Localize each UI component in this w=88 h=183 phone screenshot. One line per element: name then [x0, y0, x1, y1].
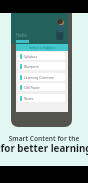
- button[interactable]: Notes: [18, 94, 65, 102]
- staticText: Old Paper: [24, 85, 40, 90]
- staticText: Syllabus: [24, 54, 38, 59]
- staticText: Select a Subject: [29, 45, 56, 50]
- button[interactable]: Syllabus: [18, 52, 65, 60]
- staticText: for better learning: [0, 142, 88, 155]
- button[interactable]: Select a Subject: [16, 44, 68, 51]
- staticText: Learning Outcome: [24, 75, 54, 80]
- staticText: Smart Content for the: [0, 134, 88, 143]
- staticText: Hello: [16, 32, 28, 38]
- button[interactable]: Learning Outcome: [18, 73, 65, 81]
- button[interactable]: Old Paper: [18, 83, 65, 91]
- button[interactable]: Blueprint: [18, 62, 65, 70]
- staticText: Notes: [24, 96, 34, 101]
- staticText: Blueprint: [24, 64, 39, 69]
